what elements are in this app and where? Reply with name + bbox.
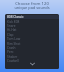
staticText: Perc (7, 50, 14, 54)
staticText: Crash (7, 46, 16, 50)
staticText: Cowbell (7, 59, 19, 63)
button[interactable]: Crash (5, 46, 59, 50)
button[interactable]: Kick 808 (5, 20, 59, 24)
staticText: Choose from 120 (15, 1, 49, 7)
staticText: Kick 808 (7, 20, 20, 24)
staticText: Tom Low (7, 37, 21, 41)
button[interactable]: Hi-Hat (5, 28, 59, 32)
button[interactable]: Rim Shot (5, 42, 59, 46)
button[interactable]: Shaker (5, 55, 59, 59)
button[interactable]: Scroll down (5, 61, 59, 67)
staticText: Rim Shot (7, 42, 21, 46)
staticText: 808 Classic (7, 15, 24, 19)
staticText: Hi-Hat (7, 28, 17, 32)
button[interactable]: Snare (5, 24, 59, 28)
button[interactable]: Tom Low (5, 37, 59, 41)
staticText: Shaker (7, 55, 18, 59)
button[interactable]: Cowbell (5, 59, 59, 63)
button[interactable]: Clap (5, 33, 59, 37)
staticText: unique pad sounds (14, 5, 50, 10)
staticText: Snare (7, 24, 16, 28)
button[interactable]: 808 Classic (5, 15, 59, 19)
staticText: Clap (7, 33, 14, 37)
button[interactable]: Perc (5, 50, 59, 54)
